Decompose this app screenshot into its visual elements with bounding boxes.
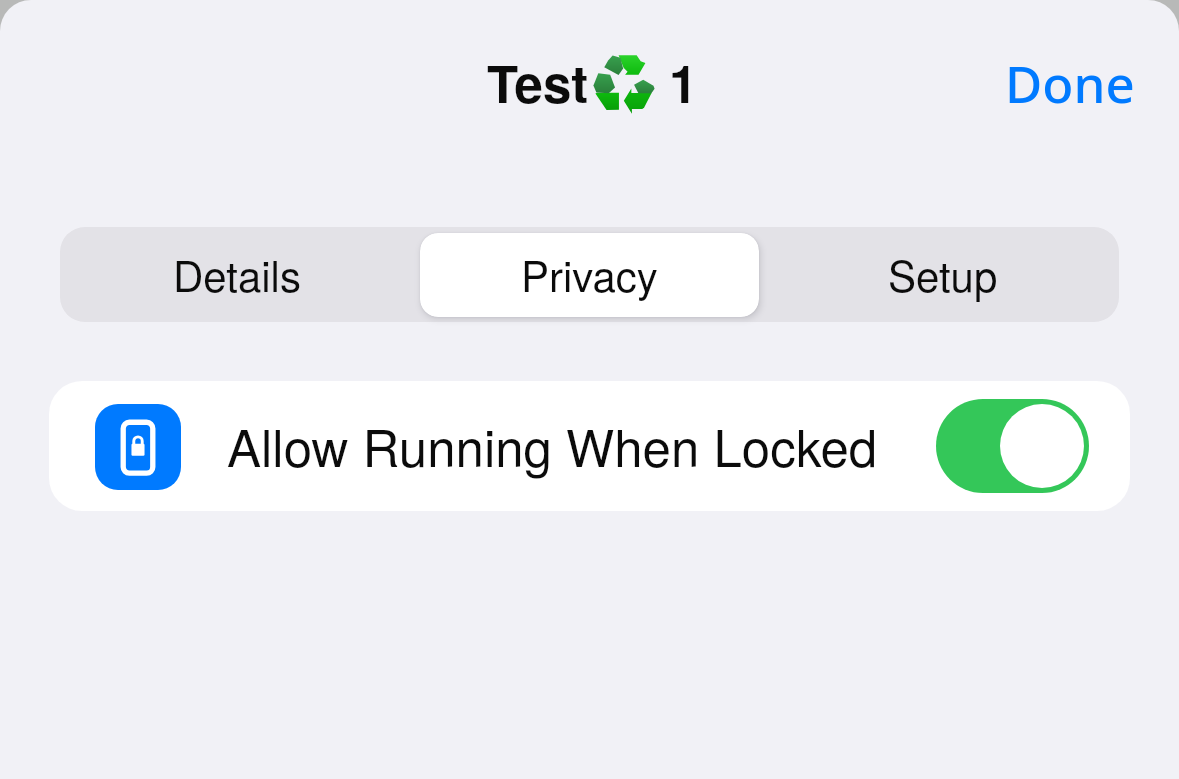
button[interactable]: Privacy	[413, 227, 766, 322]
staticText: Done	[1005, 48, 1135, 117]
staticText: Allow Running When Locked	[227, 408, 878, 481]
staticText: Privacy	[521, 244, 658, 304]
staticText: Test	[487, 46, 589, 119]
button[interactable]: Allow Running When Locked, on	[936, 399, 1089, 493]
button[interactable]: Details	[60, 227, 413, 322]
staticText: 1	[669, 46, 698, 119]
button[interactable]: Setup	[766, 227, 1119, 322]
staticText: Details	[173, 244, 301, 304]
button[interactable]: Allow Running When Locked	[49, 381, 1130, 511]
button[interactable]: Done	[1005, 40, 1135, 117]
staticText: Setup	[888, 244, 998, 304]
